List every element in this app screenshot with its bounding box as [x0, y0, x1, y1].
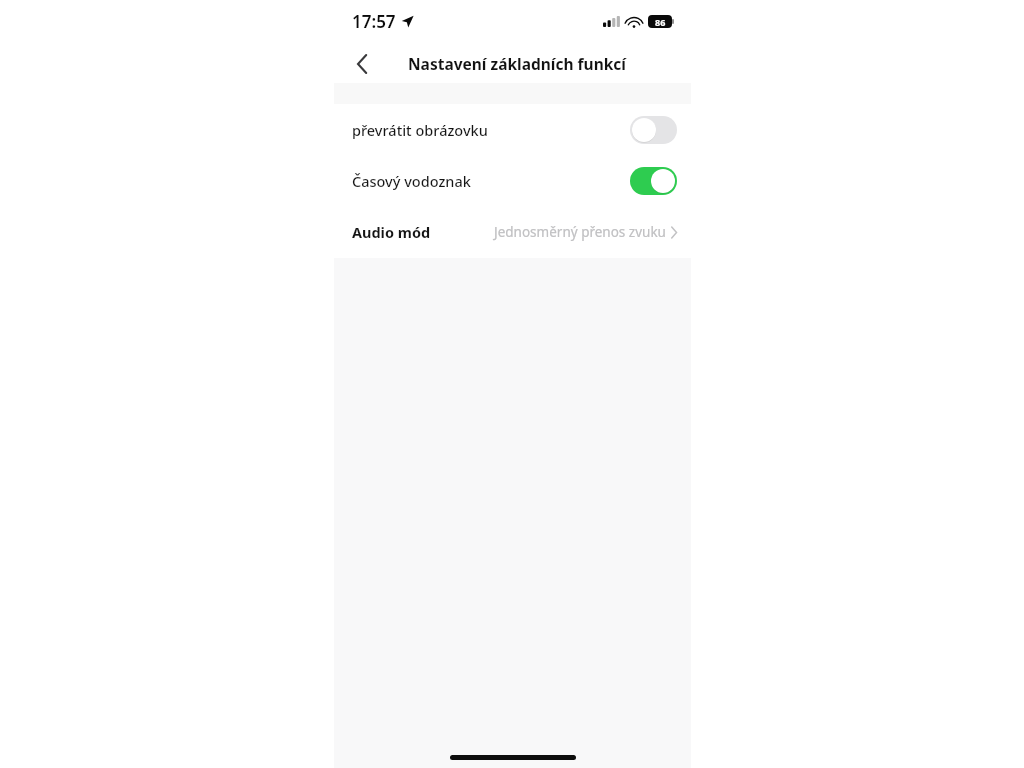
- button[interactable]: Časový vodoznak: [334, 155, 691, 206]
- staticText: Časový vodoznak: [352, 171, 630, 191]
- button[interactable]: Toggle off: [630, 116, 677, 144]
- staticText: 86: [655, 16, 666, 28]
- button[interactable]: Toggle on: [630, 167, 677, 195]
- staticText: převrátit obrázovku: [352, 120, 630, 140]
- button[interactable]: Audio mód: [334, 206, 691, 258]
- button[interactable]: Back: [348, 50, 376, 78]
- staticText: Nastavení základních funkcí: [408, 53, 626, 74]
- staticText: Audio mód: [352, 222, 431, 242]
- staticText: Jednosměrný přenos zvuku: [494, 223, 666, 241]
- staticText: 17:57: [352, 10, 396, 33]
- button[interactable]: převrátit obrázovku: [334, 104, 691, 155]
